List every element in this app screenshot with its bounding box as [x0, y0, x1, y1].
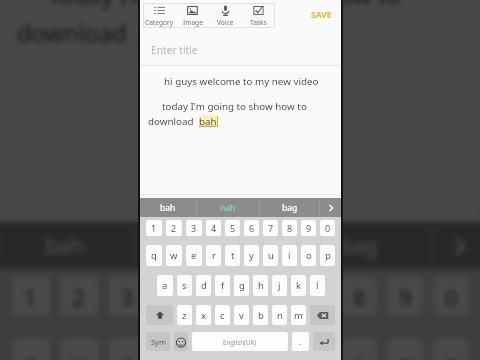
staticText: bah — [160, 202, 176, 214]
staticText: 3 — [191, 222, 197, 234]
button[interactable]: 1 — [12, 276, 50, 316]
button[interactable]: 3 — [186, 220, 202, 236]
button[interactable]: h — [253, 275, 268, 296]
button[interactable]: SAVE — [311, 9, 332, 21]
button[interactable]: . — [292, 332, 309, 351]
button[interactable]: English(UK) — [192, 332, 288, 351]
button[interactable]: 4 — [206, 220, 221, 236]
button[interactable]: 0 — [320, 220, 335, 236]
button[interactable]: m — [291, 305, 306, 325]
button[interactable]: p — [320, 245, 335, 266]
button[interactable]: t — [225, 245, 240, 266]
button[interactable]: 4 — [157, 276, 193, 316]
button[interactable]: v — [234, 305, 249, 325]
button[interactable]: 5 — [203, 276, 239, 316]
staticText: q — [151, 249, 157, 262]
button[interactable]: 5 — [225, 220, 240, 236]
staticText: m — [294, 309, 303, 322]
button[interactable]: q — [146, 245, 162, 266]
button[interactable]: i — [341, 338, 377, 360]
button[interactable]: 9 — [387, 276, 423, 316]
button[interactable]: More suggestions — [433, 222, 480, 269]
staticText: v — [239, 309, 244, 322]
button[interactable]: More suggestions — [320, 198, 341, 217]
button[interactable]: 9 — [301, 220, 316, 236]
button[interactable]: e — [109, 338, 147, 360]
button[interactable]: nah — [197, 198, 259, 217]
button[interactable]: 8 — [282, 220, 297, 236]
button[interactable]: 2 — [166, 220, 182, 236]
button[interactable]: Image — [176, 3, 209, 28]
button[interactable]: 7 — [263, 220, 278, 236]
button[interactable]: o — [301, 245, 316, 266]
button[interactable]: 1 — [146, 220, 162, 236]
staticText: u — [307, 348, 322, 360]
button[interactable]: 3 — [109, 276, 147, 316]
button[interactable]: 7 — [295, 276, 331, 316]
button[interactable]: r — [206, 245, 221, 266]
button[interactable]: g — [234, 275, 249, 296]
button[interactable]: i — [282, 245, 297, 266]
button[interactable]: n — [272, 305, 287, 325]
button[interactable]: Category — [143, 3, 176, 28]
button[interactable]: c — [215, 305, 230, 325]
button[interactable]: 8 — [341, 276, 377, 316]
staticText: 1 — [151, 222, 157, 234]
button[interactable] — [146, 305, 173, 325]
button[interactable]: 0 — [433, 276, 469, 316]
button[interactable]: d — [196, 275, 211, 296]
button[interactable]: x — [196, 305, 211, 325]
button[interactable] — [174, 332, 188, 351]
staticText: x — [201, 309, 207, 322]
button[interactable]: k — [291, 275, 306, 296]
button[interactable]: bag — [288, 222, 430, 269]
button[interactable]: w — [166, 245, 182, 266]
button[interactable]: Sym — [146, 332, 170, 351]
staticText: 0 — [445, 281, 459, 311]
staticText: r — [171, 348, 181, 360]
button[interactable]: a — [157, 275, 173, 296]
button[interactable]: z — [177, 305, 192, 325]
staticText: 9 — [399, 281, 413, 311]
button[interactable]: b — [253, 305, 268, 325]
button[interactable]: u — [263, 245, 278, 266]
button[interactable]: 6 — [249, 276, 285, 316]
staticText: Image — [183, 18, 203, 27]
button[interactable]: r — [157, 338, 193, 360]
button[interactable] — [313, 332, 335, 351]
staticText: 6 — [261, 281, 276, 311]
button[interactable]: e — [186, 245, 202, 266]
staticText: 4 — [211, 222, 217, 234]
staticText: t — [217, 348, 227, 360]
button[interactable]: l — [310, 275, 325, 296]
button[interactable]: nah — [135, 222, 285, 269]
button[interactable]: u — [295, 338, 331, 360]
button[interactable]: f — [215, 275, 230, 296]
button[interactable]: Tasks — [242, 3, 275, 28]
button[interactable]: bah — [0, 222, 133, 269]
staticText: Category — [145, 18, 174, 27]
button[interactable]: 2 — [60, 276, 99, 316]
button[interactable]: 6 — [244, 220, 259, 236]
staticText: 7 — [268, 222, 274, 234]
button[interactable]: y — [244, 245, 259, 266]
button[interactable]: s — [177, 275, 192, 296]
button[interactable] — [310, 305, 335, 325]
staticText: s — [182, 279, 187, 292]
button[interactable]: bag — [260, 198, 319, 217]
button[interactable]: j — [272, 275, 287, 296]
staticText: today I'm going to show how to — [162, 100, 307, 113]
button[interactable]: Enter title — [151, 43, 198, 57]
staticText: Enter title — [151, 43, 198, 57]
staticText: 1 — [24, 281, 38, 311]
staticText: download — [17, 17, 140, 49]
button[interactable]: bah — [140, 198, 196, 217]
button[interactable]: t — [203, 338, 239, 360]
button[interactable]: y — [249, 338, 285, 360]
button[interactable]: Voice — [209, 3, 242, 28]
